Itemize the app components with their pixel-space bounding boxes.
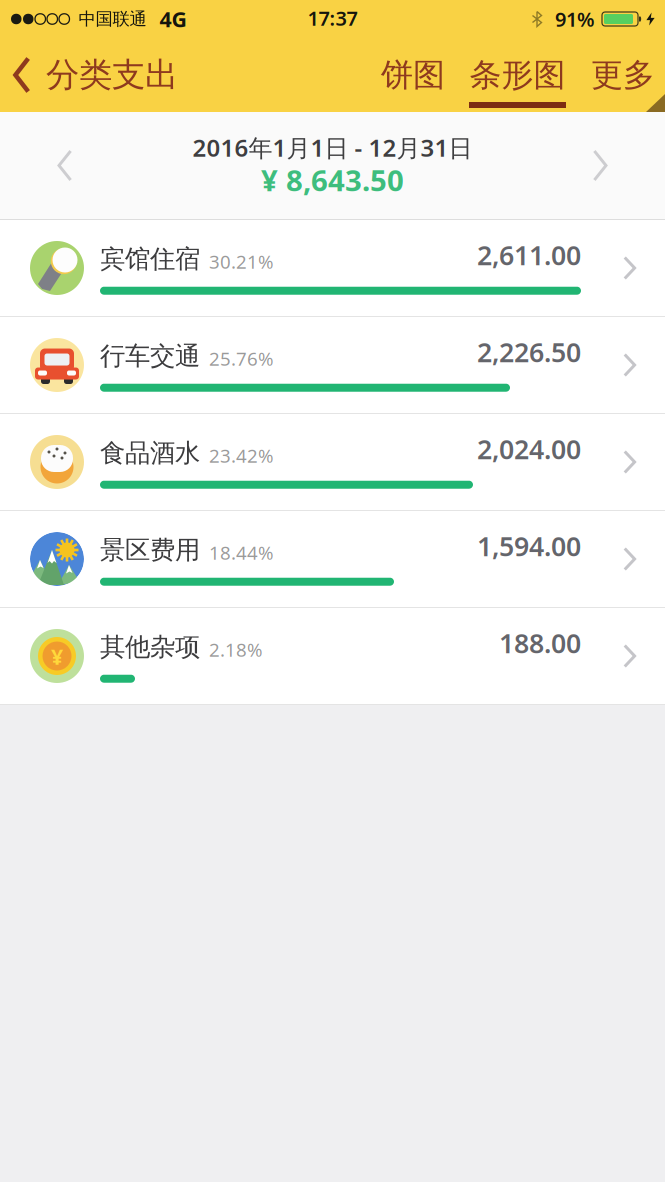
staticText: 宾馆住宿 xyxy=(100,243,200,274)
staticText: 2.18% xyxy=(209,637,263,662)
button[interactable]: 上一期 xyxy=(0,149,75,181)
button[interactable]: ¥ xyxy=(0,608,665,704)
staticText: 17:37 xyxy=(307,5,357,31)
staticText: 4G xyxy=(159,5,186,33)
staticText: 条形图 xyxy=(469,55,565,95)
button[interactable]: 食品酒水 xyxy=(0,414,665,510)
staticText: 2016年1月1日 - 12月31日 xyxy=(192,132,472,163)
staticText: 中国联通 xyxy=(78,8,146,30)
staticText: 景区费用 xyxy=(100,534,200,565)
button[interactable]: 返回 xyxy=(0,54,178,95)
staticText: ¥ 8,643.50 xyxy=(261,160,404,199)
staticText: 2,024.00 xyxy=(477,431,581,467)
staticText: 18.44% xyxy=(209,540,274,565)
button[interactable]: 条形图 xyxy=(445,38,566,112)
staticText: 2,611.00 xyxy=(477,237,581,273)
staticText: 91% xyxy=(555,6,595,32)
staticText: 其他杂项 xyxy=(100,631,200,662)
staticText: 30.21% xyxy=(209,249,274,274)
button[interactable]: 下一期 xyxy=(590,149,665,181)
staticText: 188.00 xyxy=(499,625,581,661)
button[interactable]: 行车交通 xyxy=(0,317,665,413)
staticText: 分类支出 xyxy=(46,54,178,95)
staticText: 1,594.00 xyxy=(477,528,581,564)
button[interactable]: 宾馆住宿 xyxy=(0,220,665,316)
button[interactable]: 饼图 xyxy=(381,38,445,112)
staticText: ¥ xyxy=(51,642,63,671)
button[interactable]: 景区费用 xyxy=(0,511,665,607)
staticText: 饼图 xyxy=(381,55,445,95)
staticText: 2,226.50 xyxy=(477,334,581,370)
staticText: 23.42% xyxy=(209,443,274,468)
staticText: 更多 xyxy=(591,55,655,95)
button[interactable]: 更多 xyxy=(566,38,655,112)
staticText: 25.76% xyxy=(209,346,274,371)
staticText: 行车交通 xyxy=(100,340,200,371)
staticText: 食品酒水 xyxy=(100,437,200,468)
